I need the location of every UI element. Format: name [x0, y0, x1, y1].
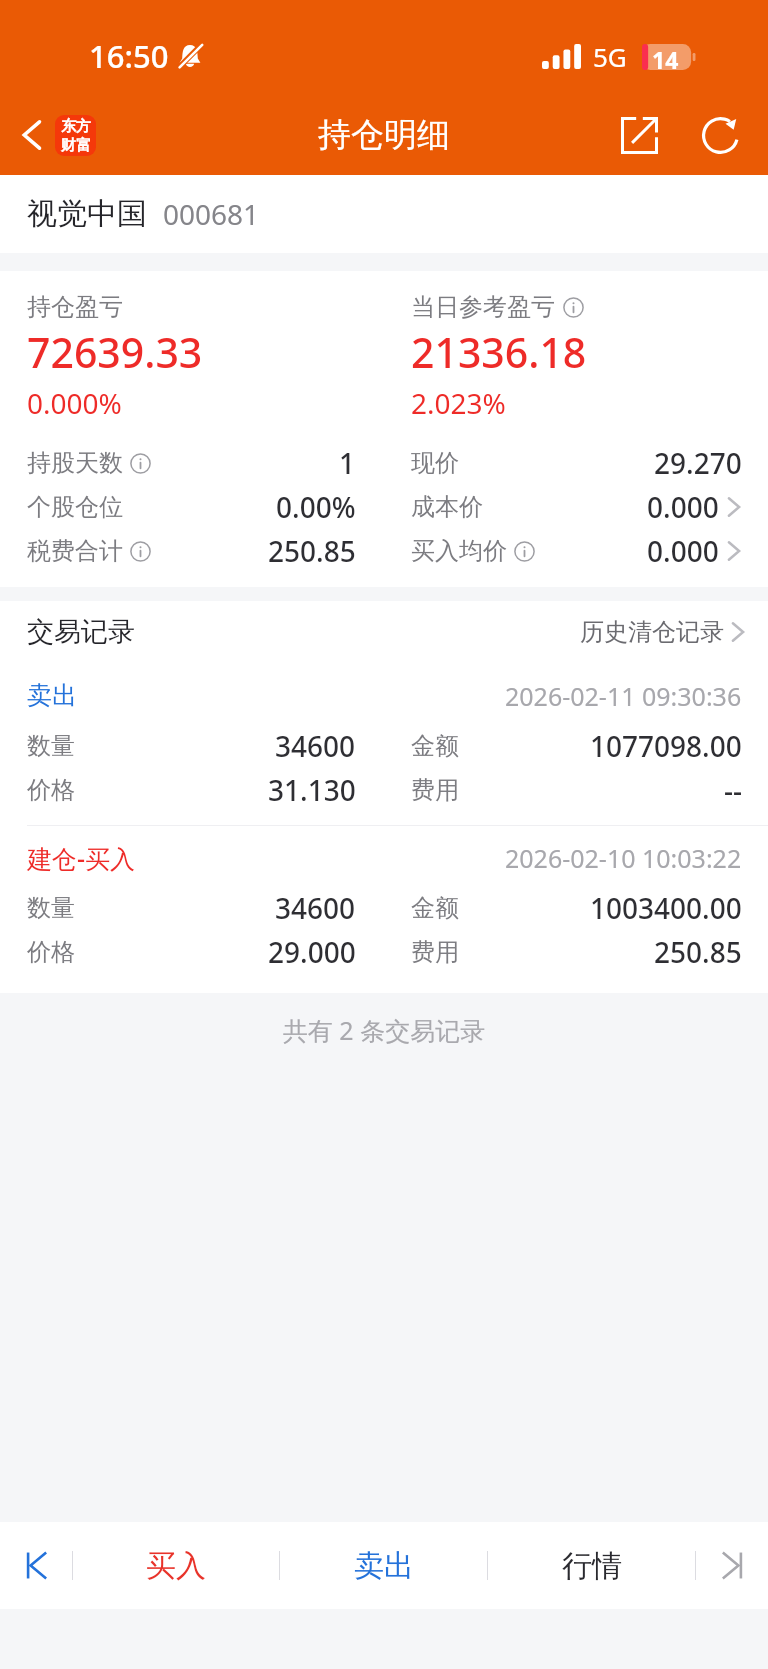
button[interactable]: 最后一条: [696, 1522, 768, 1609]
staticText: 价格: [27, 937, 75, 967]
staticText: 29.270: [654, 444, 742, 482]
staticText: 建仓-买入: [27, 841, 136, 875]
staticText: 0.000%: [27, 384, 122, 422]
staticText: 行情: [562, 1547, 622, 1585]
button[interactable]: 分享: [608, 99, 670, 171]
staticText: 数量: [27, 893, 75, 923]
staticText: 000681: [163, 195, 260, 233]
staticText: 0.00%: [276, 488, 356, 526]
staticText: 现价: [411, 448, 459, 478]
staticText: 2026-02-11 09:30:36: [505, 679, 742, 713]
staticText: 税费合计: [27, 536, 123, 566]
staticText: 1077098.00: [590, 727, 742, 765]
staticText: 交易记录: [27, 615, 135, 649]
staticText: 2.023%: [411, 384, 506, 422]
staticText: 2026-02-10 10:03:22: [505, 841, 742, 875]
staticText: 250.85: [654, 933, 742, 971]
staticText: 34600: [275, 727, 356, 765]
staticText: 东方: [61, 117, 91, 136]
staticText: 金额: [411, 731, 459, 761]
staticText: 29.000: [268, 933, 356, 971]
staticText: 买入: [146, 1547, 206, 1585]
staticText: 14: [652, 44, 679, 70]
button[interactable]: 买入: [73, 1522, 279, 1609]
staticText: 0.000: [647, 532, 719, 570]
staticText: 视觉中国: [27, 195, 147, 233]
staticText: 共有 2 条交易记录: [0, 1013, 768, 1047]
staticText: 5G: [593, 39, 627, 74]
button[interactable]: 第一条: [0, 1522, 72, 1609]
button[interactable]: 卖出: [280, 1522, 487, 1609]
staticText: 21336.18: [411, 324, 587, 380]
staticText: 卖出: [354, 1547, 414, 1585]
staticText: 34600: [275, 889, 356, 927]
staticText: 费用: [411, 937, 459, 967]
staticText: 1003400.00: [590, 889, 742, 927]
staticText: 买入均价: [411, 536, 507, 566]
staticText: 卖出: [27, 680, 77, 711]
staticText: 72639.33: [27, 324, 203, 380]
staticText: 价格: [27, 775, 75, 805]
staticText: 成本价: [411, 492, 483, 522]
staticText: 0.000: [647, 488, 719, 526]
staticText: 持仓盈亏: [27, 292, 123, 322]
button[interactable]: 刷新: [689, 99, 751, 171]
staticText: --: [724, 771, 742, 809]
staticText: 财富: [61, 136, 91, 155]
staticText: 费用: [411, 775, 459, 805]
staticText: 250.85: [268, 532, 356, 570]
staticText: 数量: [27, 731, 75, 761]
button[interactable]: 历史清仓记录: [580, 601, 746, 662]
staticText: 历史清仓记录: [580, 617, 724, 647]
staticText: 持仓明细: [318, 114, 450, 156]
staticText: 1: [339, 444, 356, 482]
button[interactable]: 行情: [488, 1522, 695, 1609]
staticText: 16:50: [89, 35, 169, 77]
button[interactable]: 返回 东方财富: [0, 95, 106, 175]
staticText: 个股仓位: [27, 492, 123, 522]
staticText: 持股天数: [27, 448, 123, 478]
staticText: 当日参考盈亏: [411, 292, 555, 322]
staticText: 金额: [411, 893, 459, 923]
staticText: 31.130: [268, 771, 356, 809]
